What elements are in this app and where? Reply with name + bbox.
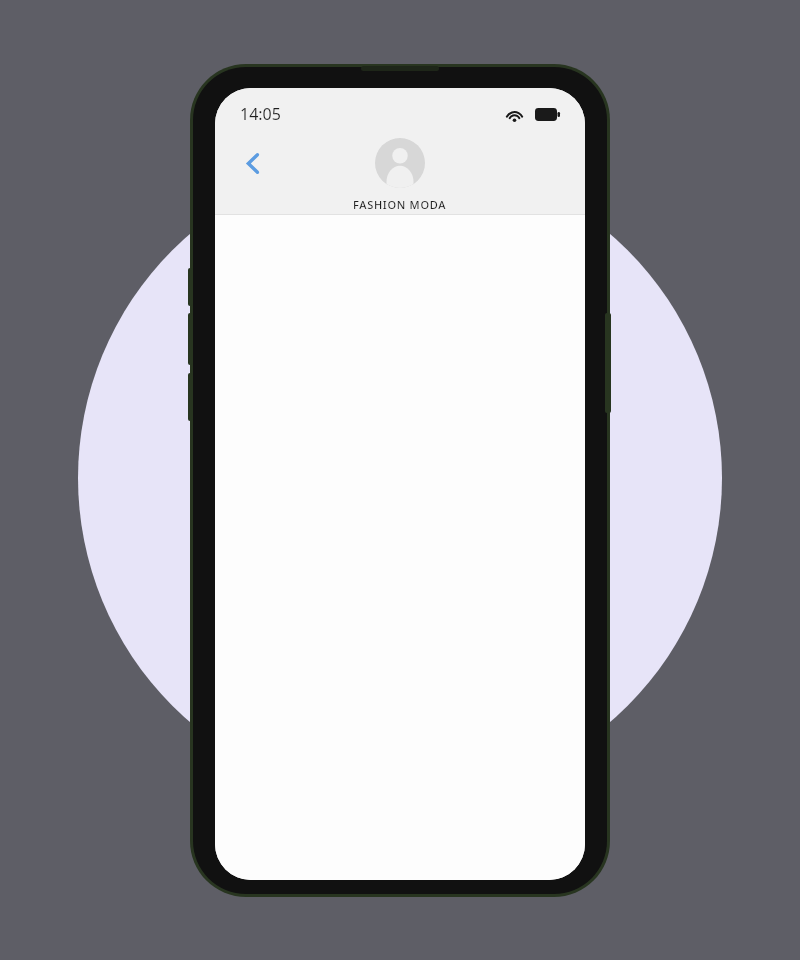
staticText: FASHION MODA bbox=[353, 197, 447, 212]
button[interactable]: Volume down bbox=[188, 313, 193, 365]
button[interactable]: Volume up bbox=[188, 268, 193, 306]
staticText: 14:05 bbox=[240, 103, 281, 125]
button[interactable]: FASHION MODA bbox=[353, 138, 447, 212]
button[interactable]: Back bbox=[229, 140, 275, 186]
button[interactable]: Power bbox=[605, 313, 611, 413]
button[interactable]: Mute bbox=[188, 373, 193, 421]
